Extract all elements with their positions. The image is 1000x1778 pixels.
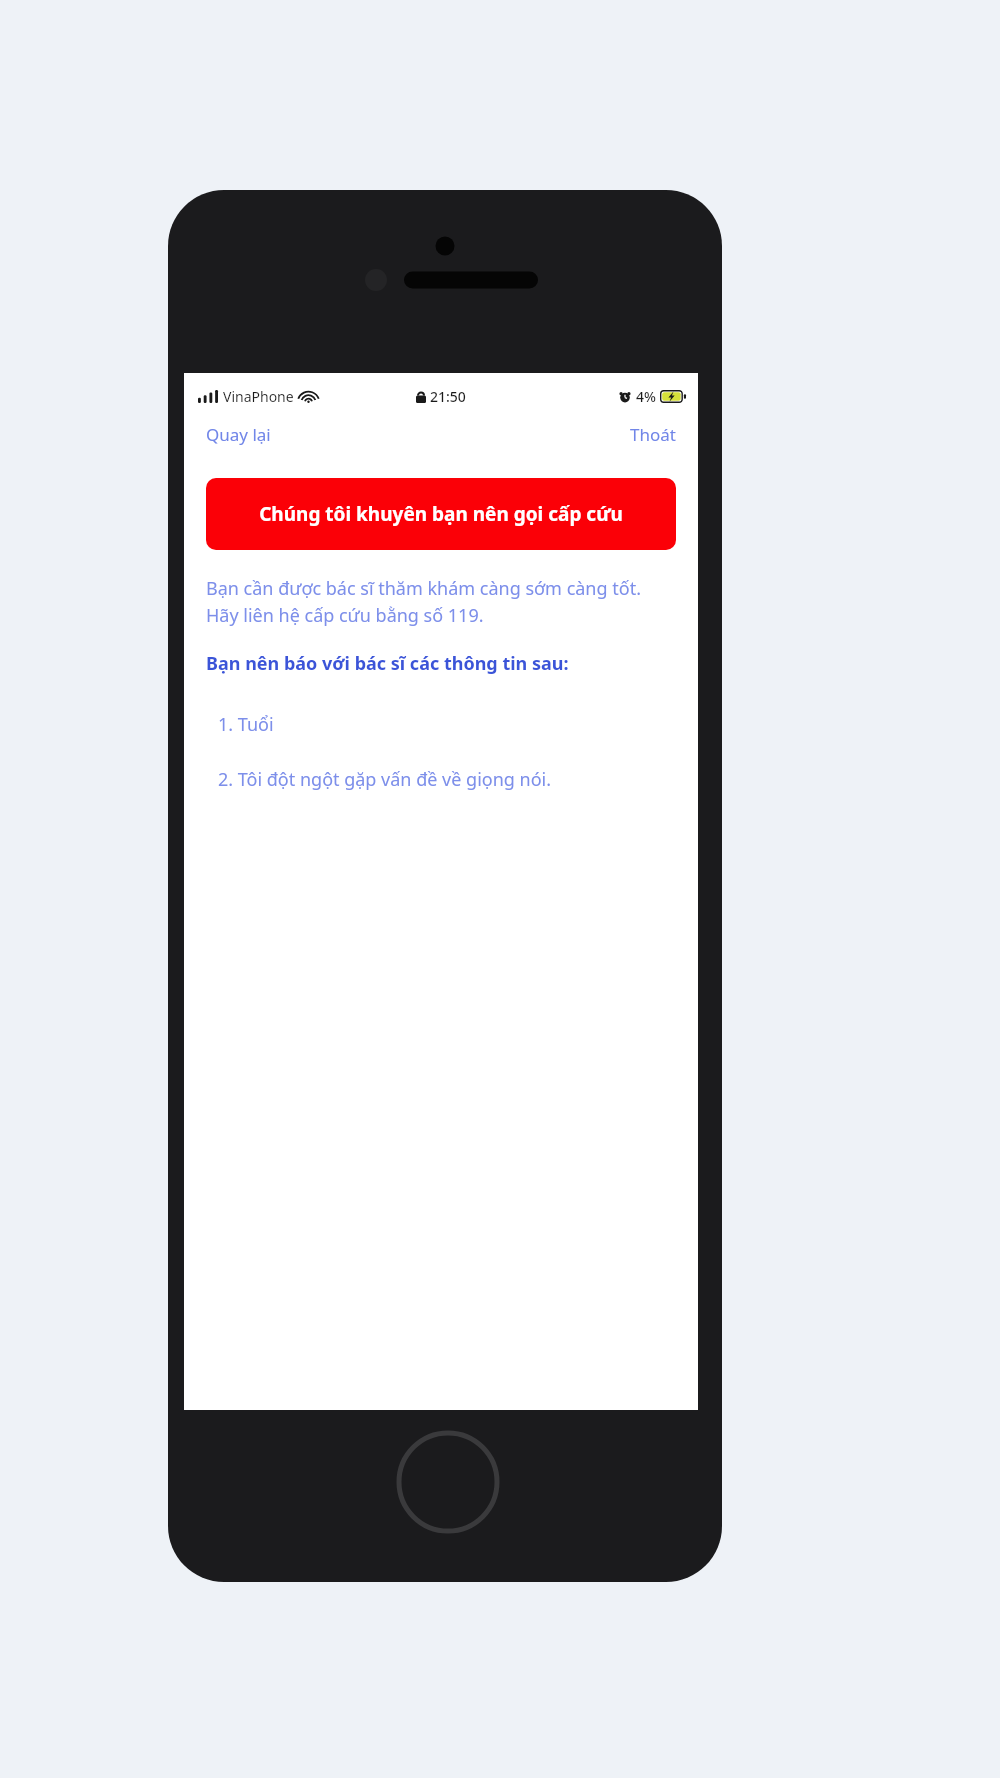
- staticText: VinaPhone: [223, 387, 294, 406]
- staticText: Quay lại: [206, 423, 271, 446]
- staticText: 1. Tuổi: [218, 712, 274, 737]
- staticText: Thoát: [630, 423, 676, 446]
- staticText: Chúng tôi khuyên bạn nên gọi cấp cứu: [259, 501, 623, 527]
- button[interactable]: 2. Tôi đột ngột gặp vấn đề về giọng nói.: [184, 765, 698, 794]
- staticText: Bạn cần được bác sĩ thăm khám càng sớm c…: [206, 576, 676, 627]
- staticText: 21:50: [430, 387, 466, 406]
- button[interactable]: 1. Tuổi: [184, 710, 698, 739]
- button[interactable]: Thoát: [618, 419, 688, 450]
- staticText: Bạn nên báo với bác sĩ các thông tin sau…: [206, 651, 569, 676]
- staticText: 2. Tôi đột ngột gặp vấn đề về giọng nói.: [218, 767, 552, 792]
- staticText: 4%: [636, 387, 656, 406]
- button[interactable]: Quay lại: [194, 419, 283, 450]
- button[interactable]: Chúng tôi khuyên bạn nên gọi cấp cứu: [206, 478, 676, 550]
